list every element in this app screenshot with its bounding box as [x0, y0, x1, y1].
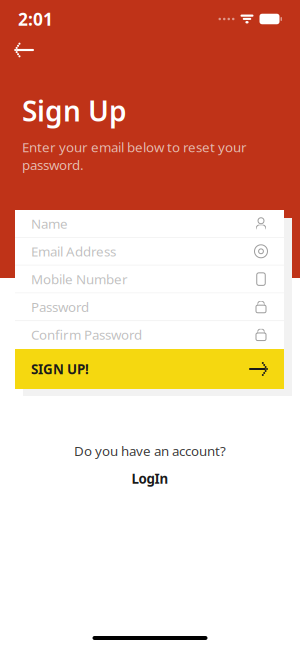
button[interactable]: Mobile Number — [15, 266, 284, 293]
button[interactable]: Back — [0, 34, 44, 66]
staticText: Enter your email below to reset your pas… — [22, 138, 247, 174]
button[interactable]: Name — [15, 210, 284, 238]
staticText: Confirm Password — [31, 326, 142, 343]
button[interactable]: SIGN UP! — [15, 349, 284, 389]
button[interactable]: Email Address — [15, 238, 284, 266]
staticText: SIGN UP! — [31, 360, 89, 378]
staticText: Password — [31, 298, 89, 316]
staticText: Mobile Number — [31, 270, 128, 288]
button[interactable]: Confirm Password — [15, 321, 284, 349]
staticText: 2:01 — [18, 7, 53, 30]
button[interactable]: Password — [15, 293, 284, 321]
staticText: Name — [31, 215, 68, 232]
button[interactable]: LogIn — [119, 467, 180, 490]
staticText: LogIn — [131, 470, 168, 487]
staticText: Sign Up — [22, 92, 127, 129]
staticText: Do you have an account? — [74, 442, 226, 460]
staticText: Email Address — [31, 242, 116, 260]
